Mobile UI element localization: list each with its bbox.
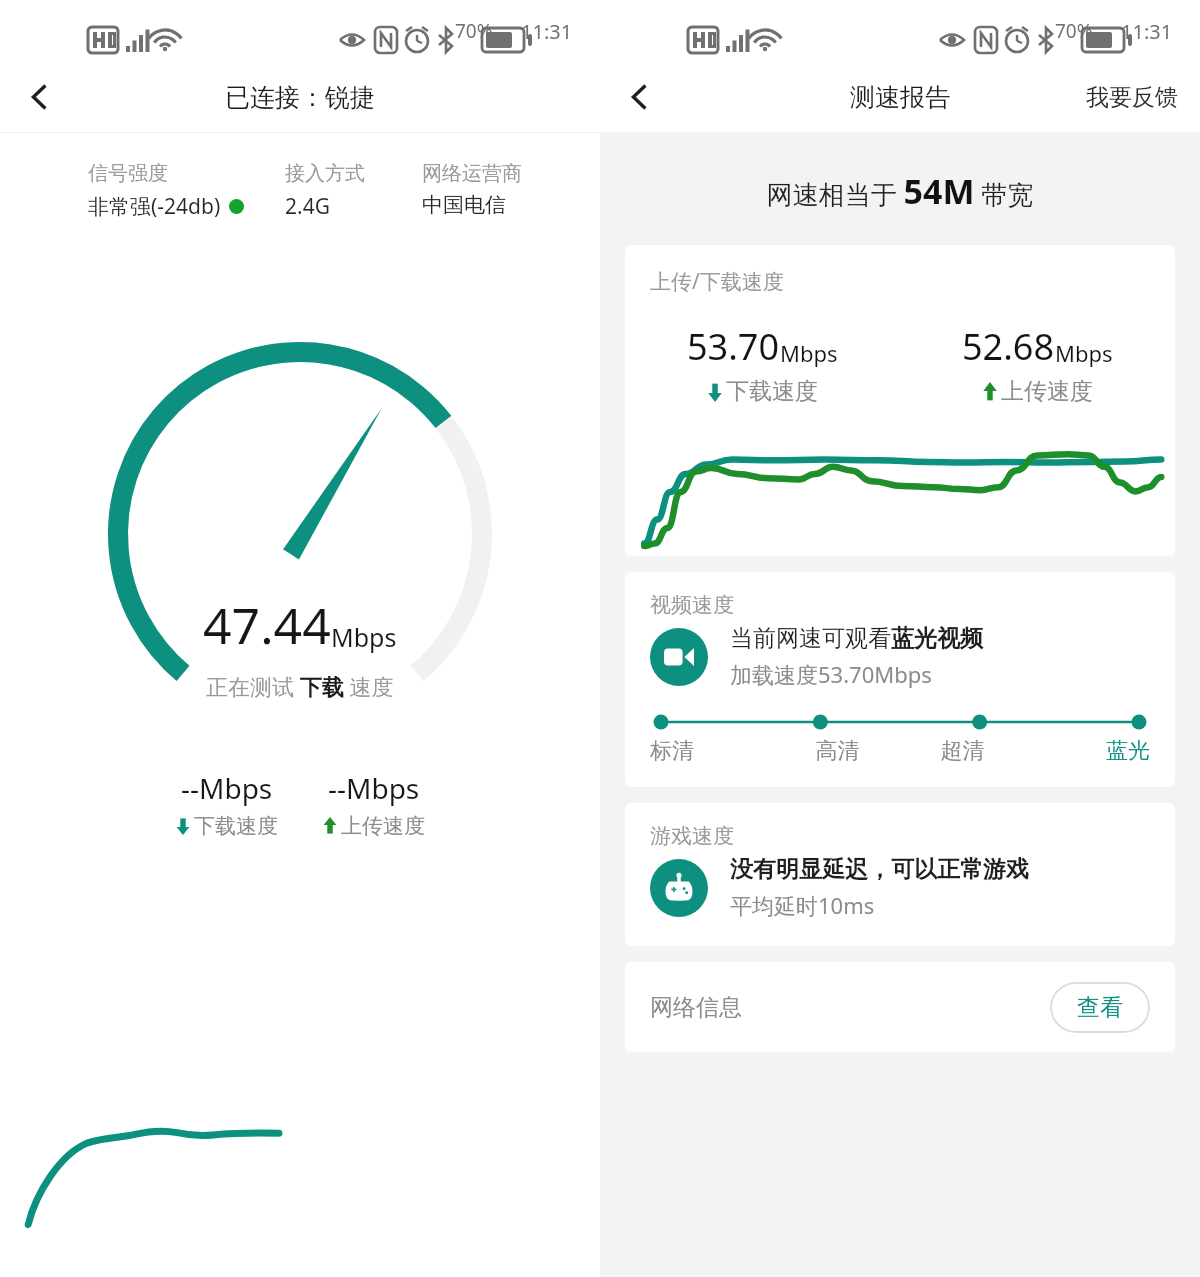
staticText: --Mbps xyxy=(181,769,273,807)
staticText: 当前网速可观看蓝光视频 xyxy=(730,624,983,653)
staticText: Mbps xyxy=(331,620,397,654)
staticText: --Mbps xyxy=(328,769,420,807)
staticText: 11:31 xyxy=(1121,18,1173,45)
staticText: Mbps xyxy=(780,338,838,368)
staticText: 超清 xyxy=(900,737,1025,765)
staticText: 上传速度 xyxy=(1001,377,1093,406)
staticText: 11:31 xyxy=(521,18,573,45)
staticText: 游戏速度 xyxy=(650,823,734,849)
staticText: 我要反馈 xyxy=(1086,83,1178,112)
staticText: 70% xyxy=(1055,18,1093,44)
staticText: 网络信息 xyxy=(650,993,742,1022)
button[interactable]: 查看 xyxy=(1050,982,1150,1033)
staticText: 蓝光 xyxy=(1025,737,1150,765)
staticText: 2.4G xyxy=(285,192,330,221)
staticText: 47.44 xyxy=(203,591,331,659)
button[interactable]: 视频速度 xyxy=(625,572,1175,787)
button[interactable]: Back xyxy=(8,65,72,129)
button[interactable]: 游戏速度 xyxy=(625,803,1175,946)
staticText: 已连接：锐捷 xyxy=(225,82,375,113)
staticText: 52.68 xyxy=(962,322,1055,371)
staticText: 加载速度53.70Mbps xyxy=(730,659,932,689)
staticText: 下载速度 xyxy=(194,813,278,839)
staticText: 平均延时10ms xyxy=(730,890,875,920)
staticText: 信号强度 xyxy=(88,161,168,186)
staticText: 测速报告 xyxy=(850,82,950,113)
button[interactable]: 我要反馈 xyxy=(1074,73,1190,122)
staticText: 上传/下载速度 xyxy=(650,267,784,296)
button[interactable]: 上传/下载速度 xyxy=(625,245,1175,556)
staticText: 上传速度 xyxy=(341,813,425,839)
staticText: 正在测试 下载 速度 xyxy=(206,671,394,701)
staticText: Mbps xyxy=(1055,338,1113,368)
staticText: 查看 xyxy=(1077,993,1123,1022)
staticText: 视频速度 xyxy=(650,592,734,618)
staticText: 中国电信 xyxy=(422,192,506,218)
staticText: 网速相当于 54M 带宽 xyxy=(600,168,1200,214)
staticText: 非常强(-24db) xyxy=(88,192,221,221)
staticText: 53.70 xyxy=(687,322,780,371)
staticText: 下载速度 xyxy=(726,377,818,406)
button[interactable]: Back xyxy=(608,65,672,129)
staticText: 接入方式 xyxy=(285,161,365,186)
staticText: 没有明显延迟，可以正常游戏 xyxy=(730,855,1029,884)
staticText: 高清 xyxy=(775,737,900,765)
button[interactable]: 网络信息 xyxy=(625,962,1175,1052)
staticText: 网络运营商 xyxy=(422,161,522,186)
staticText: 标清 xyxy=(650,737,775,765)
staticText: 70% xyxy=(455,18,493,44)
